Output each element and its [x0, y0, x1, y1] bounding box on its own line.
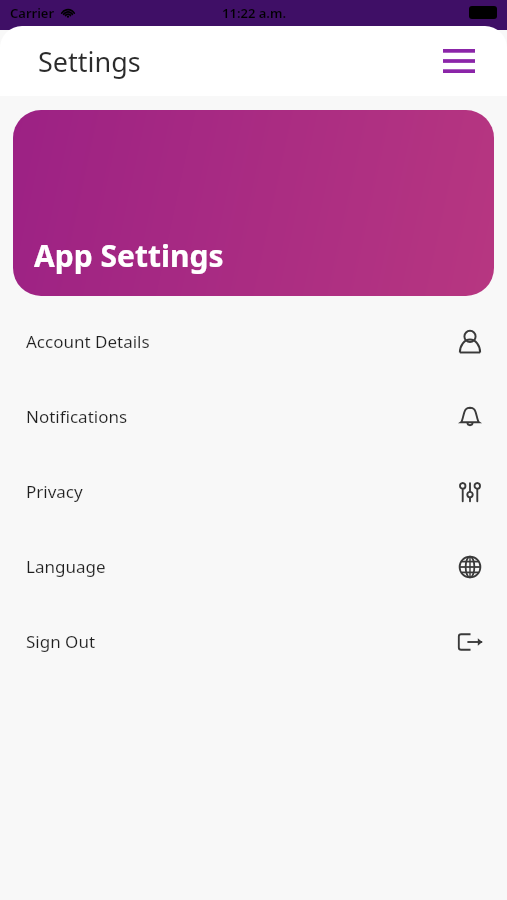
- staticText: Privacy: [26, 480, 83, 503]
- staticText: 11:22 a.m.: [222, 4, 286, 22]
- staticText: Language: [26, 555, 106, 578]
- button[interactable]: Account Details: [0, 304, 507, 379]
- button[interactable]: Notifications: [0, 379, 507, 454]
- staticText: Notifications: [26, 405, 128, 428]
- staticText: App Settings: [34, 235, 224, 276]
- button[interactable]: Menu: [437, 39, 481, 83]
- button[interactable]: Sign Out: [0, 604, 507, 679]
- button[interactable]: Language: [0, 529, 507, 604]
- staticText: Settings: [38, 43, 141, 80]
- button[interactable]: Privacy: [0, 454, 507, 529]
- button[interactable]: App Settings: [13, 110, 494, 296]
- staticText: Account Details: [26, 330, 150, 353]
- staticText: Sign Out: [26, 630, 96, 653]
- staticText: Carrier: [10, 4, 55, 22]
